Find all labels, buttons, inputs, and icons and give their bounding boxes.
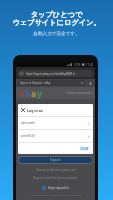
button[interactable]: johnsmith xyxy=(18,117,93,129)
button[interactable]: New tab xyxy=(87,80,93,86)
staticText: y xyxy=(37,88,42,99)
button[interactable]: Stay signed in xyxy=(18,186,93,190)
button[interactable]: jsmith333 xyxy=(18,130,93,142)
staticText: 100% xyxy=(74,63,81,67)
staticText: Stay signed in xyxy=(48,186,70,190)
staticText: Sign in xyxy=(50,158,61,162)
staticText: b xyxy=(25,88,31,99)
staticText: 17:45 xyxy=(86,63,94,67)
staticText: e xyxy=(19,88,25,99)
staticText: https://signin.ebay.com/ws/eBayISAPI.d xyxy=(26,72,75,76)
staticText: Register now for a free account xyxy=(33,176,78,180)
other: Close xyxy=(21,108,25,112)
staticText: Create an account xyxy=(66,91,92,95)
button[interactable]: https://signin.ebay.com/ws/eBayISAPI.d xyxy=(18,70,93,77)
staticText: Having problems signing in? xyxy=(36,168,76,172)
button[interactable]: CLOSE xyxy=(78,146,91,152)
staticText: Log in as xyxy=(27,108,43,113)
staticText: タップひとつで ウェブサイトにログイン。 xyxy=(12,10,101,28)
staticText: a xyxy=(31,88,37,99)
button[interactable]: Having problems signing in? xyxy=(18,168,93,172)
staticText: jsmith333 xyxy=(21,134,87,138)
staticText: 自動入力で安全です。 xyxy=(33,31,80,37)
button[interactable]: Sign in or Register - eBay xyxy=(18,80,85,86)
button[interactable]: eBay xyxy=(19,88,42,99)
button[interactable]: Sign in xyxy=(19,157,92,163)
staticText: Using a public or shared device? Uncheck… xyxy=(20,193,91,200)
button[interactable]: Register now for a free account xyxy=(18,176,93,180)
staticText: johnsmith xyxy=(21,121,87,125)
staticText: Sign in or Register - eBay xyxy=(20,81,81,85)
staticText: CLOSE xyxy=(80,147,89,151)
